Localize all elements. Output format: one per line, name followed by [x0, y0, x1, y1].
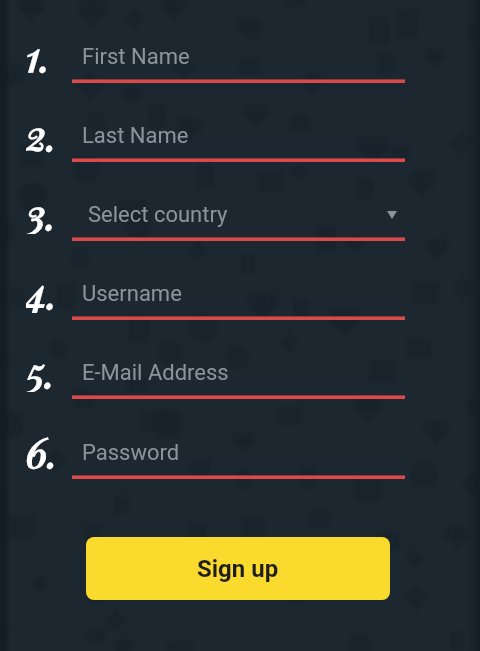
- button[interactable]: E-Mail Address: [72, 355, 405, 403]
- staticText: 4.: [26, 265, 58, 313]
- staticText: First Name: [82, 44, 190, 70]
- staticText: E-Mail Address: [82, 360, 229, 386]
- button[interactable]: First Name: [72, 39, 405, 87]
- staticText: 1.: [26, 28, 51, 76]
- button[interactable]: Select country: [378, 201, 406, 229]
- button[interactable]: Select country: [72, 197, 405, 245]
- staticText: Username: [82, 281, 182, 307]
- button[interactable]: Last Name: [72, 118, 405, 166]
- button[interactable]: Sign up: [86, 537, 390, 600]
- staticText: Select country: [88, 202, 228, 228]
- staticText: 5.: [26, 344, 55, 392]
- staticText: 6.: [26, 424, 58, 472]
- button[interactable]: Password: [72, 435, 405, 483]
- staticText: Last Name: [82, 123, 189, 149]
- staticText: 2.: [26, 107, 57, 155]
- staticText: 3.: [26, 186, 56, 234]
- staticText: Sign up: [197, 555, 279, 583]
- staticText: Password: [82, 440, 180, 466]
- button[interactable]: Username: [72, 276, 405, 324]
